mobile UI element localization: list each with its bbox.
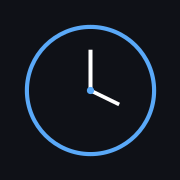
button[interactable]: Clock face (0, 0, 180, 180)
